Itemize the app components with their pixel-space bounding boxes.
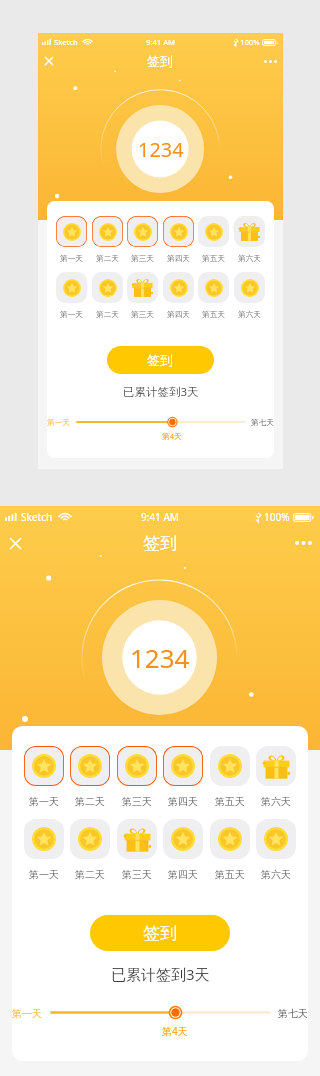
staticText: 1234 [138, 136, 184, 163]
button[interactable]: Close [3, 531, 27, 555]
staticText: 100% [240, 37, 260, 47]
staticText: 第七天 [278, 1007, 308, 1020]
button[interactable]: 第二天 [92, 216, 123, 247]
button[interactable]: 第二天 [70, 819, 110, 859]
button[interactable]: More options [260, 53, 280, 70]
staticText: 第五天 [202, 254, 225, 264]
staticText: Sketch [54, 37, 78, 47]
button[interactable]: 第一天 [56, 216, 87, 247]
staticText: 第一天 [29, 795, 59, 808]
button[interactable]: 第六天 [256, 746, 296, 786]
staticText: 签到 [147, 352, 174, 368]
button[interactable]: 第一天 [24, 746, 64, 786]
staticText: 第六天 [238, 310, 261, 320]
staticText: 第一天 [29, 868, 59, 881]
staticText: 9:41 AM [146, 37, 176, 47]
button[interactable]: 第四天 [163, 819, 203, 859]
staticText: 第三天 [131, 254, 154, 264]
staticText: 第五天 [202, 310, 225, 320]
button[interactable]: 第六天 [234, 272, 265, 303]
staticText: 第一天 [60, 254, 83, 264]
staticText: 第4天 [162, 1024, 188, 1038]
staticText: 9:41 AM [141, 510, 179, 524]
staticText: 第三天 [122, 868, 152, 881]
staticText: 第二天 [75, 795, 105, 808]
button[interactable]: 第四天 [163, 216, 194, 247]
staticText: 第六天 [238, 254, 261, 264]
staticText: 第一天 [60, 310, 83, 320]
staticText: 签到 [143, 923, 177, 944]
staticText: 第五天 [215, 868, 245, 881]
staticText: 第一天 [12, 1007, 42, 1020]
staticText: 签到 [147, 53, 174, 69]
button[interactable]: 第二天 [92, 272, 123, 303]
staticText: 第四天 [168, 795, 198, 808]
button[interactable]: 第四天 [163, 746, 203, 786]
staticText: 第二天 [96, 254, 119, 264]
staticText: 第四天 [167, 254, 190, 264]
staticText: 第四天 [168, 868, 198, 881]
staticText: 第六天 [261, 795, 291, 808]
button[interactable]: 第五天 [210, 819, 250, 859]
staticText: Sketch [21, 510, 53, 524]
button[interactable]: 第一天 [24, 819, 64, 859]
button[interactable]: 第三天 [127, 216, 158, 247]
button[interactable]: 第六天 [234, 216, 265, 247]
staticText: 已累计签到3天 [111, 964, 210, 984]
staticText: 第七天 [251, 418, 274, 428]
button[interactable]: 签到 [90, 915, 230, 951]
button[interactable]: 签到 [107, 346, 214, 374]
staticText: 第四天 [167, 310, 190, 320]
staticText: 第三天 [131, 310, 154, 320]
staticText: 第三天 [122, 795, 152, 808]
button[interactable]: 第三天 [117, 819, 157, 859]
staticText: 第二天 [96, 310, 119, 320]
button[interactable]: 第二天 [70, 746, 110, 786]
staticText: 第五天 [215, 795, 245, 808]
button[interactable]: 第五天 [198, 216, 229, 247]
staticText: 100% [264, 510, 290, 524]
staticText: 第六天 [261, 868, 291, 881]
button[interactable]: 第六天 [256, 819, 296, 859]
button[interactable]: 第三天 [117, 746, 157, 786]
staticText: 1234 [130, 640, 190, 675]
button[interactable]: 第五天 [198, 272, 229, 303]
button[interactable]: 第五天 [210, 746, 250, 786]
button[interactable]: More options [290, 532, 316, 554]
staticText: 第一天 [47, 418, 70, 428]
staticText: 已累计签到3天 [123, 384, 199, 400]
button[interactable]: 第一天 [56, 272, 87, 303]
staticText: 第4天 [162, 431, 182, 441]
button[interactable]: 第四天 [163, 272, 194, 303]
button[interactable]: Close [40, 52, 58, 70]
staticText: 签到 [143, 533, 177, 554]
button[interactable]: 第三天 [127, 272, 158, 303]
staticText: 第二天 [75, 868, 105, 881]
